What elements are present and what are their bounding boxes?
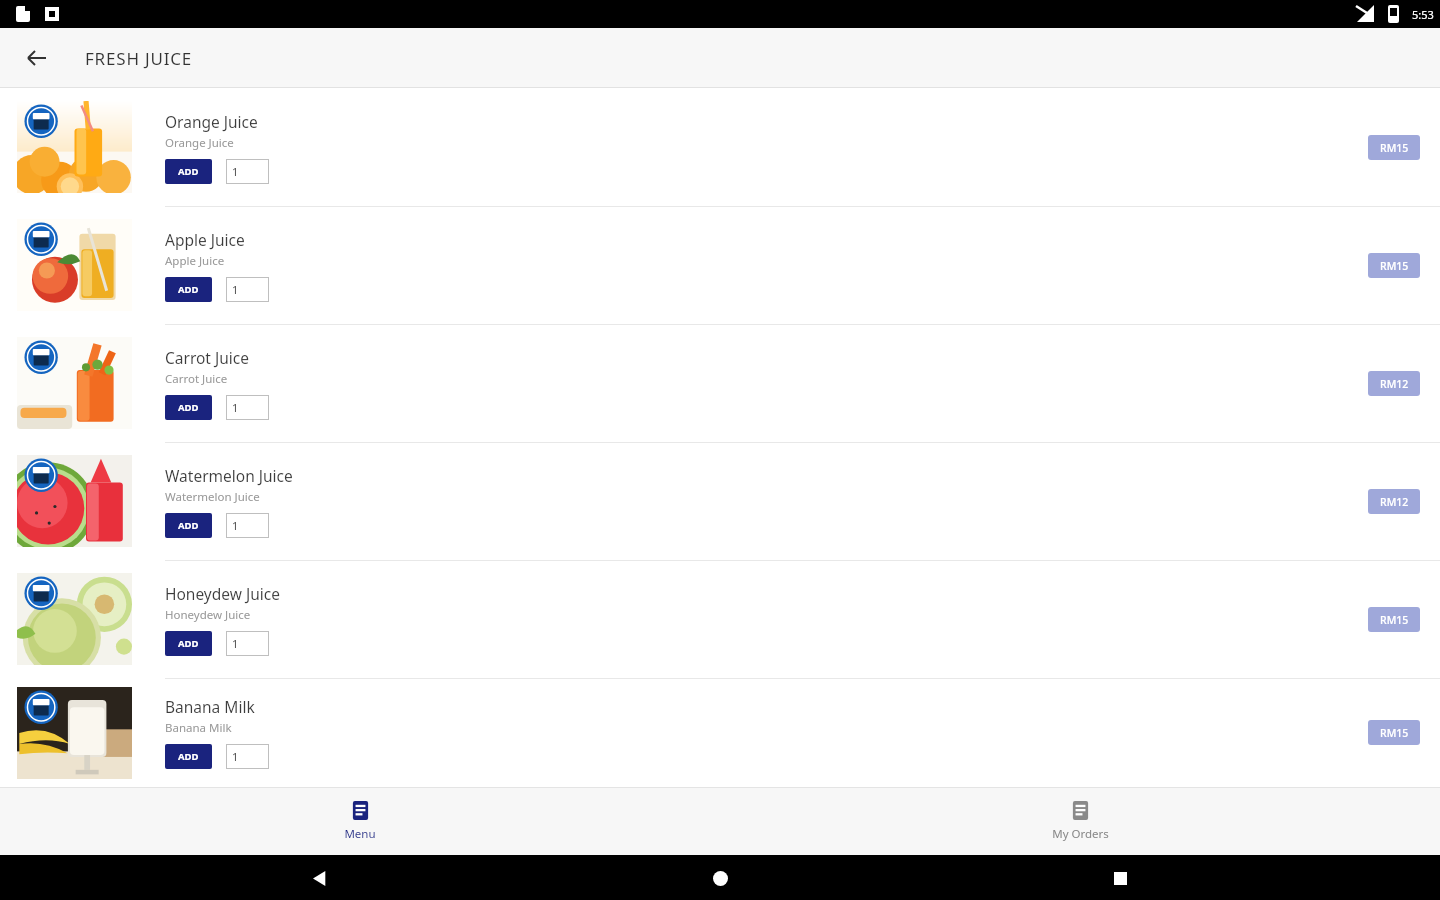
staticText: ADD	[178, 165, 199, 178]
button[interactable]: ADD	[165, 744, 212, 769]
staticText: Orange Juice	[165, 135, 234, 151]
button[interactable]: Banana Milk	[0, 678, 1440, 787]
staticText: Banana Milk	[165, 720, 232, 736]
button[interactable]: Honeydew Juice	[0, 560, 1440, 678]
button[interactable]: My Orders	[1005, 787, 1155, 855]
staticText: Carrot Juice	[165, 347, 249, 368]
button[interactable]: Quantity	[226, 395, 269, 420]
button[interactable]: RM12	[1368, 371, 1420, 396]
staticText: My Orders	[1052, 826, 1109, 842]
staticText: Honeydew Juice	[165, 583, 280, 604]
button[interactable]: RM15	[1368, 135, 1420, 160]
staticText: 1	[232, 749, 239, 764]
button[interactable]: RM15	[1368, 253, 1420, 278]
staticText: 1	[232, 282, 239, 297]
button[interactable]: Watermelon Juice	[0, 442, 1440, 560]
button[interactable]: ADD	[165, 513, 212, 538]
button[interactable]: Orange Juice	[0, 88, 1440, 206]
staticText: Watermelon Juice	[165, 489, 260, 505]
staticText: ADD	[178, 283, 199, 296]
button[interactable]: Menu	[285, 787, 435, 855]
staticText: 1	[232, 400, 239, 415]
button[interactable]: Carrot Juice	[0, 324, 1440, 442]
button[interactable]: ADD	[165, 277, 212, 302]
staticText: RM12	[1380, 495, 1409, 509]
staticText: ADD	[178, 401, 199, 414]
button[interactable]: Quantity	[226, 159, 269, 184]
staticText: RM15	[1380, 141, 1409, 155]
staticText: Honeydew Juice	[165, 607, 251, 623]
staticText: Watermelon Juice	[165, 465, 293, 486]
button[interactable]: ADD	[165, 631, 212, 656]
staticText: 1	[232, 636, 239, 651]
staticText: RM15	[1380, 613, 1409, 627]
staticText: 1	[232, 518, 239, 533]
button[interactable]: RM15	[1368, 607, 1420, 632]
staticText: RM12	[1380, 377, 1409, 391]
button[interactable]: Apple Juice	[0, 206, 1440, 324]
button[interactable]: Recent apps	[1099, 857, 1141, 899]
staticText: RM15	[1380, 259, 1409, 273]
button[interactable]: Back	[18, 39, 56, 77]
staticText: FRESH JUICE	[85, 47, 193, 70]
button[interactable]: Quantity	[226, 744, 269, 769]
button[interactable]: Quantity	[226, 631, 269, 656]
staticText: ADD	[178, 637, 199, 650]
button[interactable]: Quantity	[226, 513, 269, 538]
staticText: Carrot Juice	[165, 371, 228, 387]
staticText: RM15	[1380, 726, 1409, 740]
button[interactable]: Back	[299, 857, 341, 899]
staticText: Banana Milk	[165, 696, 255, 717]
button[interactable]: Quantity	[226, 277, 269, 302]
staticText: ADD	[178, 750, 199, 763]
button[interactable]: ADD	[165, 159, 212, 184]
staticText: Apple Juice	[165, 253, 225, 269]
staticText: Orange Juice	[165, 111, 258, 132]
button[interactable]: RM15	[1368, 720, 1420, 745]
staticText: Apple Juice	[165, 229, 245, 250]
staticText: 5:53	[1412, 7, 1434, 22]
staticText: 1	[232, 164, 239, 179]
staticText: Menu	[344, 826, 376, 842]
button[interactable]: RM12	[1368, 489, 1420, 514]
button[interactable]: Home	[699, 857, 741, 899]
button[interactable]: ADD	[165, 395, 212, 420]
staticText: ADD	[178, 519, 199, 532]
